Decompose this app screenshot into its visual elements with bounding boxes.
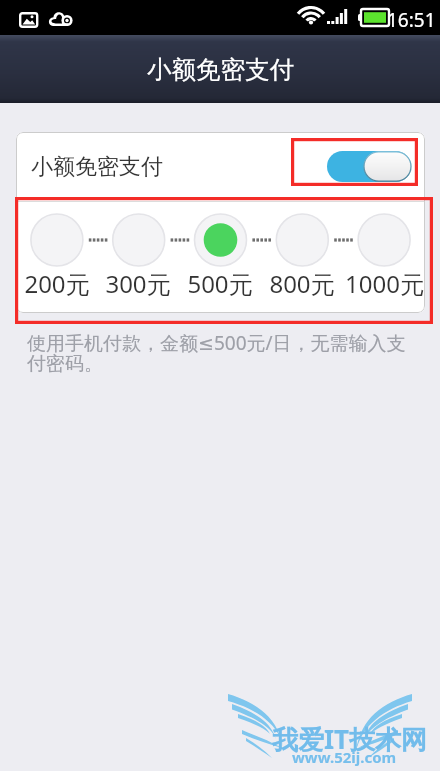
staticText: 16:51 [387,7,436,33]
button[interactable]: Toggle small payment [327,151,411,182]
staticText: 500元 [187,267,253,300]
button[interactable]: 小额免密支付 [16,132,425,201]
button[interactable]: 300元 [97,267,179,300]
staticText: 200元 [24,267,90,300]
button[interactable]: 500元 [179,267,261,300]
staticText: 小额免密支付 [147,54,294,85]
staticText: www.52ij.com [292,747,397,767]
button[interactable]: 1000元 [343,267,425,300]
staticText: 我爱IT技术网 [272,721,428,757]
button[interactable]: 200元 [16,267,97,300]
staticText: 1000元 [345,267,424,300]
button[interactable]: 800元 [261,267,343,300]
staticText: 小额免密支付 [31,153,163,181]
staticText: 800元 [269,267,335,300]
staticText: 300元 [105,267,171,300]
staticText: 使用手机付款，金额≤500元/日，无需输入支 付密码。 [27,330,406,375]
